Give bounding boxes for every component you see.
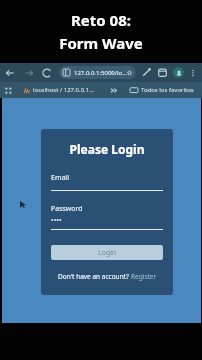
button[interactable]: Apps: [4, 86, 13, 95]
button[interactable]: Profile: [173, 67, 184, 78]
staticText: Don't have an account?: [58, 272, 131, 281]
staticText: Register: [131, 272, 157, 281]
button[interactable]: Tabs: [157, 67, 168, 78]
button[interactable]: Reload: [41, 67, 53, 79]
staticText: Form Wave: [59, 33, 143, 53]
staticText: Please Login: [51, 141, 163, 157]
staticText: Login: [98, 248, 117, 258]
button[interactable]: Back: [4, 67, 16, 79]
button[interactable]: Email: [51, 173, 163, 191]
staticText: Email: [51, 173, 69, 183]
button[interactable]: Todos los favoritos: [128, 86, 196, 94]
staticText: localhost / 127.0.0.1…: [33, 86, 94, 94]
button[interactable]: localhost / 127.0.0.1…: [21, 85, 96, 95]
button[interactable]: Extensions: [141, 67, 152, 78]
staticText: ••••: [51, 216, 62, 226]
button[interactable]: Password: [51, 204, 163, 230]
staticText: Password: [51, 204, 83, 214]
button[interactable]: Don't have an account?: [51, 272, 163, 281]
staticText: Reto 08:: [71, 10, 131, 30]
button[interactable]: Login: [51, 245, 163, 260]
button[interactable]: 127.0.0.1:5000/lo…: [59, 66, 136, 79]
button[interactable]: More bookmarks: [109, 86, 118, 95]
button[interactable]: More options: [188, 68, 198, 78]
button[interactable]: Forward: [23, 67, 35, 79]
staticText: 127.0.0.1:5000/lo…: [74, 69, 127, 77]
staticText: Todos los favoritos: [141, 86, 194, 94]
